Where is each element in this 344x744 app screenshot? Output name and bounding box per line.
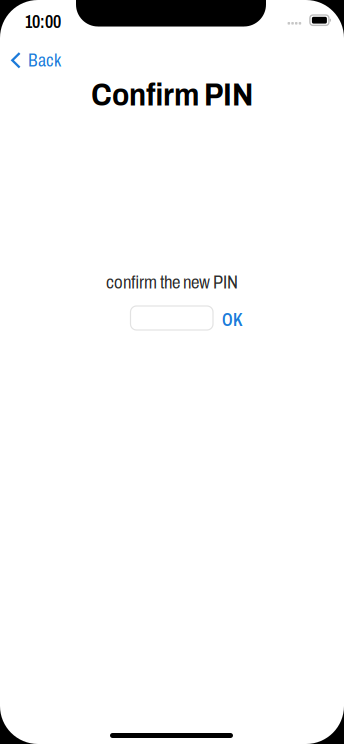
button[interactable]: Back (9, 45, 63, 76)
staticText: OK (222, 310, 243, 330)
button[interactable]: OK (218, 305, 247, 335)
staticText: Back (28, 50, 61, 71)
staticText: confirm the new PIN (106, 272, 238, 292)
staticText: Confirm PIN (91, 78, 253, 112)
staticText: 10:00 (25, 12, 61, 32)
